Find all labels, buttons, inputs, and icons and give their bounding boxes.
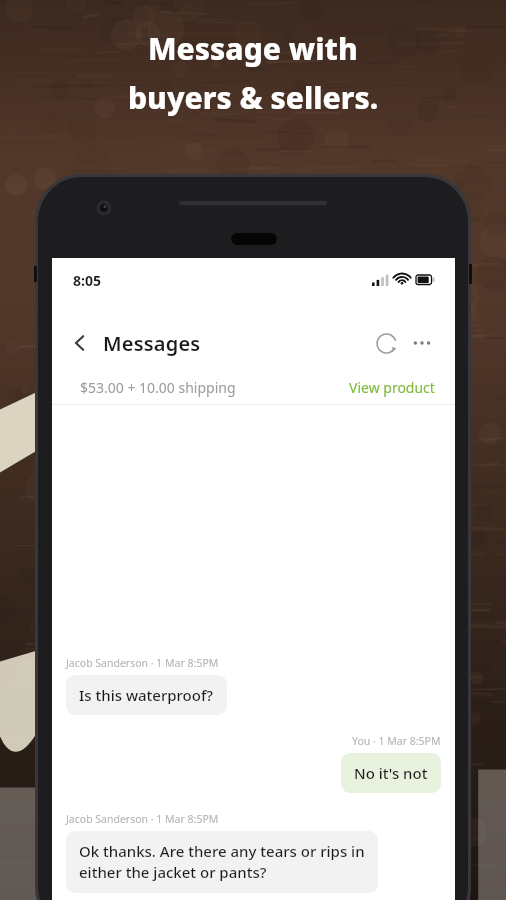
staticText: No it's not [354, 763, 428, 783]
button[interactable]: Ok thanks. Are there any tears or rips i… [66, 831, 378, 893]
button[interactable]: No it's not [341, 753, 441, 793]
staticText: 8:05 [73, 271, 101, 290]
staticText: Is this waterproof? [79, 685, 214, 705]
staticText: Messages [103, 330, 201, 357]
button[interactable]: Refresh [369, 326, 403, 360]
button[interactable]: View product [349, 378, 435, 397]
staticText: $53.00 + 10.00 shipping [80, 378, 236, 397]
staticText: Ok thanks. Are there any tears or rips i… [79, 841, 365, 883]
staticText: Jacob Sanderson · 1 Mar 8:5PM [66, 812, 219, 826]
staticText: buyers & sellers. [128, 77, 379, 118]
staticText: Jacob Sanderson · 1 Mar 8:5PM [66, 656, 219, 670]
staticText: Message with [148, 28, 358, 69]
button[interactable]: Is this waterproof? [66, 675, 227, 715]
staticText: You · 1 Mar 8:5PM [352, 734, 441, 748]
button[interactable]: Back [63, 326, 97, 360]
staticText: View product [349, 378, 435, 397]
button[interactable]: More options [405, 326, 439, 360]
